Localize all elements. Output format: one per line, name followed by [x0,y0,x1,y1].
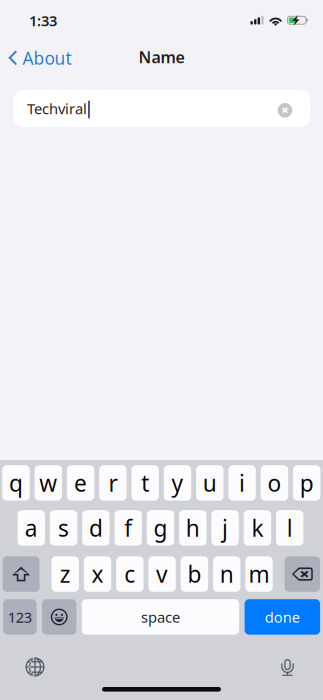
button[interactable]: b [181,556,208,592]
staticText: p [300,468,314,498]
button[interactable]: d [82,510,110,546]
staticText: b [187,559,201,589]
staticText: l [287,513,293,543]
staticText: e [74,468,87,498]
button[interactable]: h [179,510,206,546]
button[interactable]: done [245,599,320,635]
button[interactable]: j [211,510,239,546]
staticText: x [91,559,103,589]
button[interactable]: p [293,465,320,501]
button[interactable]: 123 [3,599,37,635]
button[interactable]: Emoji [42,599,76,635]
staticText: Techviral [27,99,87,118]
staticText: h [186,513,200,543]
staticText: s [58,513,69,543]
staticText: done [265,607,300,627]
button[interactable]: space [82,599,239,635]
button[interactable]: g [147,510,174,546]
staticText: q [9,468,23,498]
button[interactable]: a [18,510,45,546]
staticText: i [239,468,245,498]
staticText: space [141,607,180,627]
button[interactable]: About [0,43,80,73]
button[interactable]: Dictation [272,654,302,680]
button[interactable]: Clear text [268,91,302,125]
staticText: r [108,468,117,498]
button[interactable]: c [116,556,143,592]
staticText: v [156,559,168,589]
staticText: c [124,559,135,589]
staticText: d [89,513,103,543]
button[interactable]: n [213,556,240,592]
button[interactable]: o [261,465,288,501]
staticText: m [248,559,269,589]
staticText: j [222,513,228,543]
button[interactable]: v [148,556,176,592]
button[interactable]: m [245,556,273,592]
button[interactable]: Shift [3,556,40,592]
staticText: n [220,559,234,589]
staticText: Name [138,46,184,68]
staticText: 123 [8,607,32,627]
staticText: a [25,513,38,543]
button[interactable]: u [196,465,223,501]
button[interactable]: Delete [285,556,320,592]
staticText: 1:33 [29,11,57,30]
staticText: About [22,46,71,69]
button[interactable]: t [131,465,159,501]
button[interactable]: s [50,510,77,546]
staticText: z [60,559,71,589]
button[interactable]: e [67,465,94,501]
button[interactable]: i [228,465,256,501]
button[interactable]: z [51,556,79,592]
button[interactable]: x [84,556,111,592]
button[interactable]: y [164,465,191,501]
staticText: o [267,468,281,498]
button[interactable]: k [244,510,271,546]
staticText: f [124,513,132,543]
staticText: u [203,468,217,498]
staticText: w [39,468,57,498]
staticText: k [251,513,263,543]
staticText: g [153,513,167,543]
staticText: t [141,468,149,498]
staticText: y [171,468,183,498]
button[interactable]: q [2,465,30,501]
button[interactable]: Next keyboard [20,654,50,680]
button[interactable]: w [35,465,62,501]
button[interactable]: f [114,510,142,546]
button[interactable]: r [99,465,127,501]
button[interactable]: l [276,510,303,546]
